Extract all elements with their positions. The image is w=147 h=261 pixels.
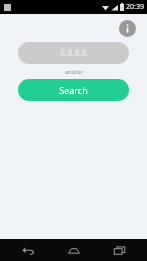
button[interactable]: Recents: [102, 239, 136, 261]
button[interactable]: Info: [117, 18, 137, 38]
staticText: 20:39: [126, 2, 144, 12]
staticText: Search: [59, 84, 88, 96]
staticText: and/or: [65, 68, 83, 75]
staticText: 8.8.8.8: [60, 47, 87, 59]
button[interactable]: 8.8.8.8: [18, 42, 129, 64]
button[interactable]: Back: [11, 239, 45, 261]
button[interactable]: Home: [57, 239, 91, 261]
button[interactable]: Search: [18, 79, 129, 101]
